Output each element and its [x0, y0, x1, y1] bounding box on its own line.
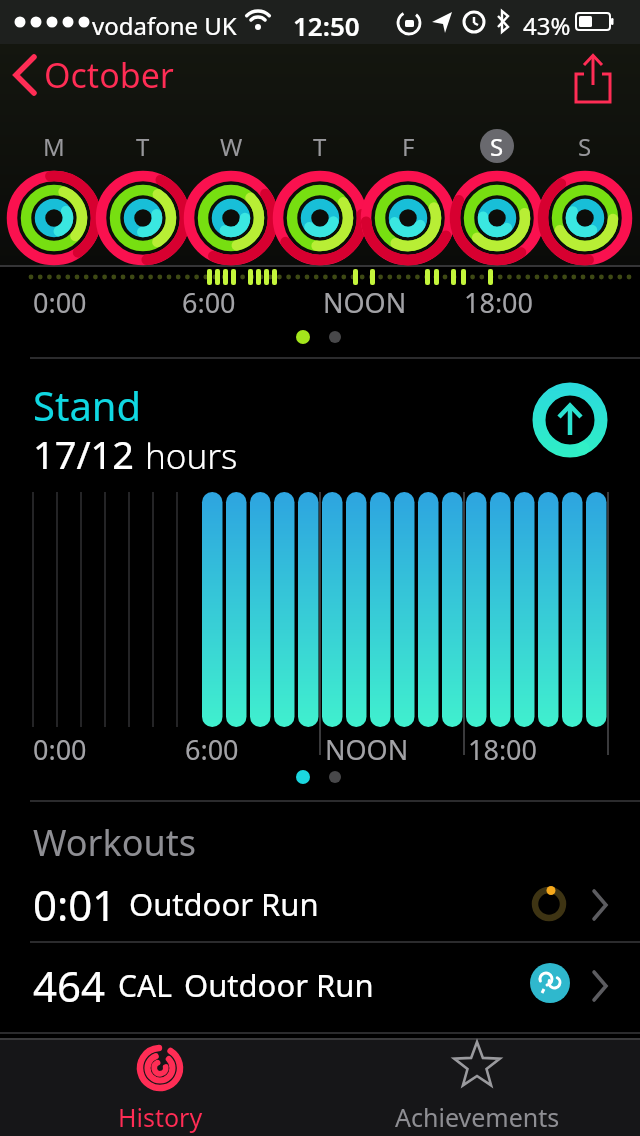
staticText: S [490, 130, 504, 163]
staticText: vodafone UK [92, 9, 237, 42]
staticText: Workouts [33, 818, 196, 867]
button[interactable]: Achievements [357, 1040, 597, 1136]
staticText: NOON [323, 284, 407, 321]
staticText: T [313, 130, 327, 163]
staticText: Outdoor Run [184, 964, 374, 1006]
staticText: 18:00 [464, 284, 534, 321]
button[interactable]: S [563, 124, 607, 168]
staticText: Achievements [395, 1100, 560, 1134]
staticText: History [118, 1100, 203, 1134]
staticText: 464 [33, 957, 106, 1014]
staticText: 6:00 [185, 731, 239, 768]
staticText: CAL [118, 965, 172, 1006]
staticText: 12:50 [293, 8, 360, 43]
button[interactable] [570, 52, 618, 104]
button[interactable]: History [80, 1040, 240, 1136]
button[interactable]: T [121, 124, 165, 168]
staticText: 6:00 [182, 284, 236, 321]
staticText: S [578, 130, 592, 163]
staticText: 0:01 [33, 876, 117, 933]
staticText: 18:00 [468, 731, 538, 768]
button[interactable]: F [386, 124, 430, 168]
staticText: NOON [325, 731, 409, 768]
staticText: 0:00 [33, 284, 87, 321]
staticText: 0:00 [33, 731, 87, 768]
staticText: M [43, 130, 65, 163]
button[interactable]: S [475, 124, 519, 168]
button[interactable]: T [298, 124, 342, 168]
staticText: October [44, 52, 174, 98]
staticText: 43% [523, 9, 571, 42]
button[interactable]: 0:01 [0, 868, 640, 940]
staticText: W [220, 130, 243, 163]
button[interactable]: M [32, 124, 76, 168]
staticText: hours [145, 432, 238, 480]
staticText: Outdoor Run [129, 883, 319, 925]
button[interactable] [532, 382, 608, 458]
button[interactable]: W [209, 124, 253, 168]
button[interactable]: October [8, 44, 174, 106]
staticText: F [402, 130, 415, 163]
button[interactable]: 464 [0, 945, 640, 1025]
staticText: T [136, 130, 150, 163]
staticText: 17/12 [33, 428, 135, 480]
staticText: Stand [33, 378, 142, 432]
